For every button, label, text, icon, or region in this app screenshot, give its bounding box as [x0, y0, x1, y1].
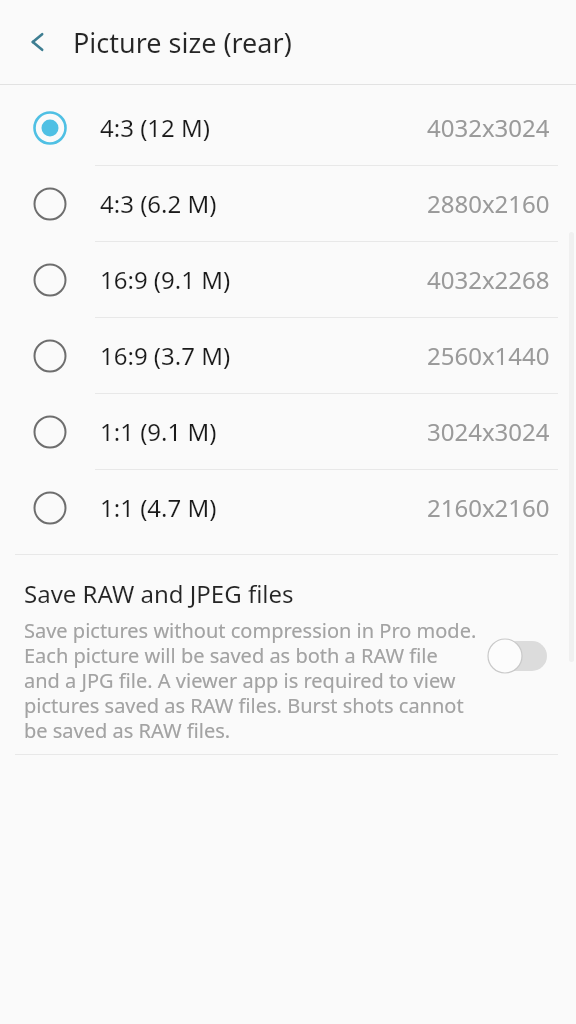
staticText: 4:3 (6.2 M) [100, 187, 217, 220]
button[interactable]: 4:3 (6.2 M) [0, 166, 576, 241]
button[interactable]: Back [12, 16, 64, 68]
button[interactable]: 1:1 (9.1 M) [0, 394, 576, 469]
staticText: 4032x3024 [427, 111, 550, 144]
staticText: 3024x3024 [427, 415, 550, 448]
staticText: Save RAW and JPEG files [24, 577, 294, 610]
staticText: 4032x2268 [427, 263, 550, 296]
staticText: 2160x2160 [427, 491, 550, 524]
button[interactable]: 16:9 (9.1 M) [0, 242, 576, 317]
staticText: 2560x1440 [427, 339, 550, 372]
staticText: 16:9 (3.7 M) [100, 339, 231, 372]
staticText: 1:1 (9.1 M) [100, 415, 217, 448]
button[interactable]: 4:3 (12 M) [0, 90, 576, 165]
staticText: 2880x2160 [427, 187, 550, 220]
button[interactable]: Save RAW and JPEG files [0, 555, 576, 754]
button[interactable]: 1:1 (4.7 M) [0, 470, 576, 545]
staticText: Save pictures without compression in Pro… [24, 617, 477, 744]
button[interactable]: Save RAW and JPEG files toggle [487, 638, 547, 674]
button[interactable]: 16:9 (3.7 M) [0, 318, 576, 393]
staticText: Picture size (rear) [73, 24, 292, 61]
staticText: 1:1 (4.7 M) [100, 491, 217, 524]
staticText: 4:3 (12 M) [100, 111, 210, 144]
staticText: 16:9 (9.1 M) [100, 263, 231, 296]
